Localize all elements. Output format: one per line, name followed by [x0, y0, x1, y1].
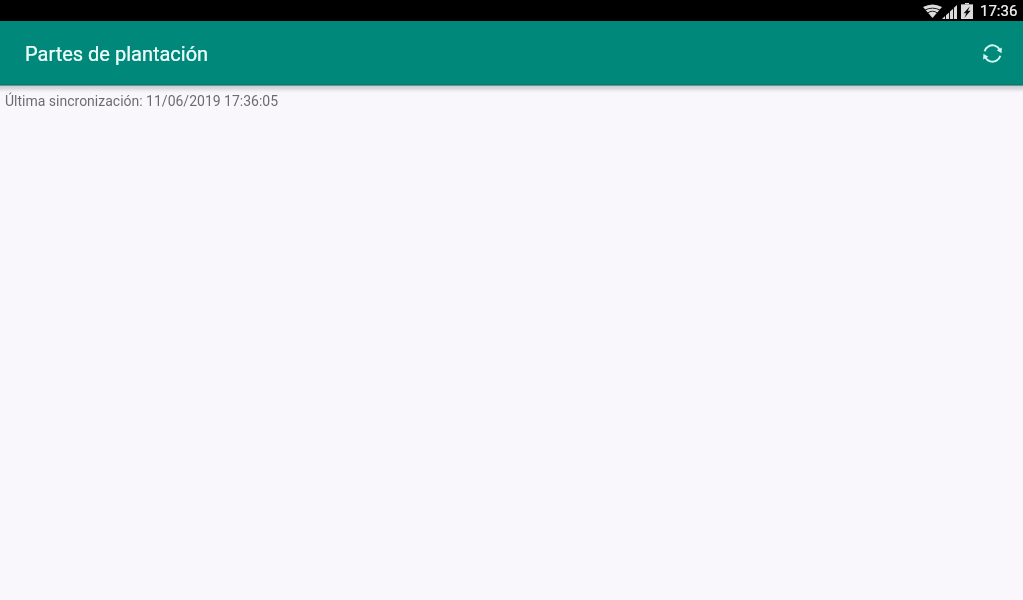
button[interactable]: Sincronizar [970, 31, 1014, 75]
staticText: 17:36 [980, 2, 1018, 20]
staticText: Partes de plantación [25, 42, 209, 65]
staticText: Última sincronización: 11/06/2019 17:36:… [5, 93, 279, 109]
